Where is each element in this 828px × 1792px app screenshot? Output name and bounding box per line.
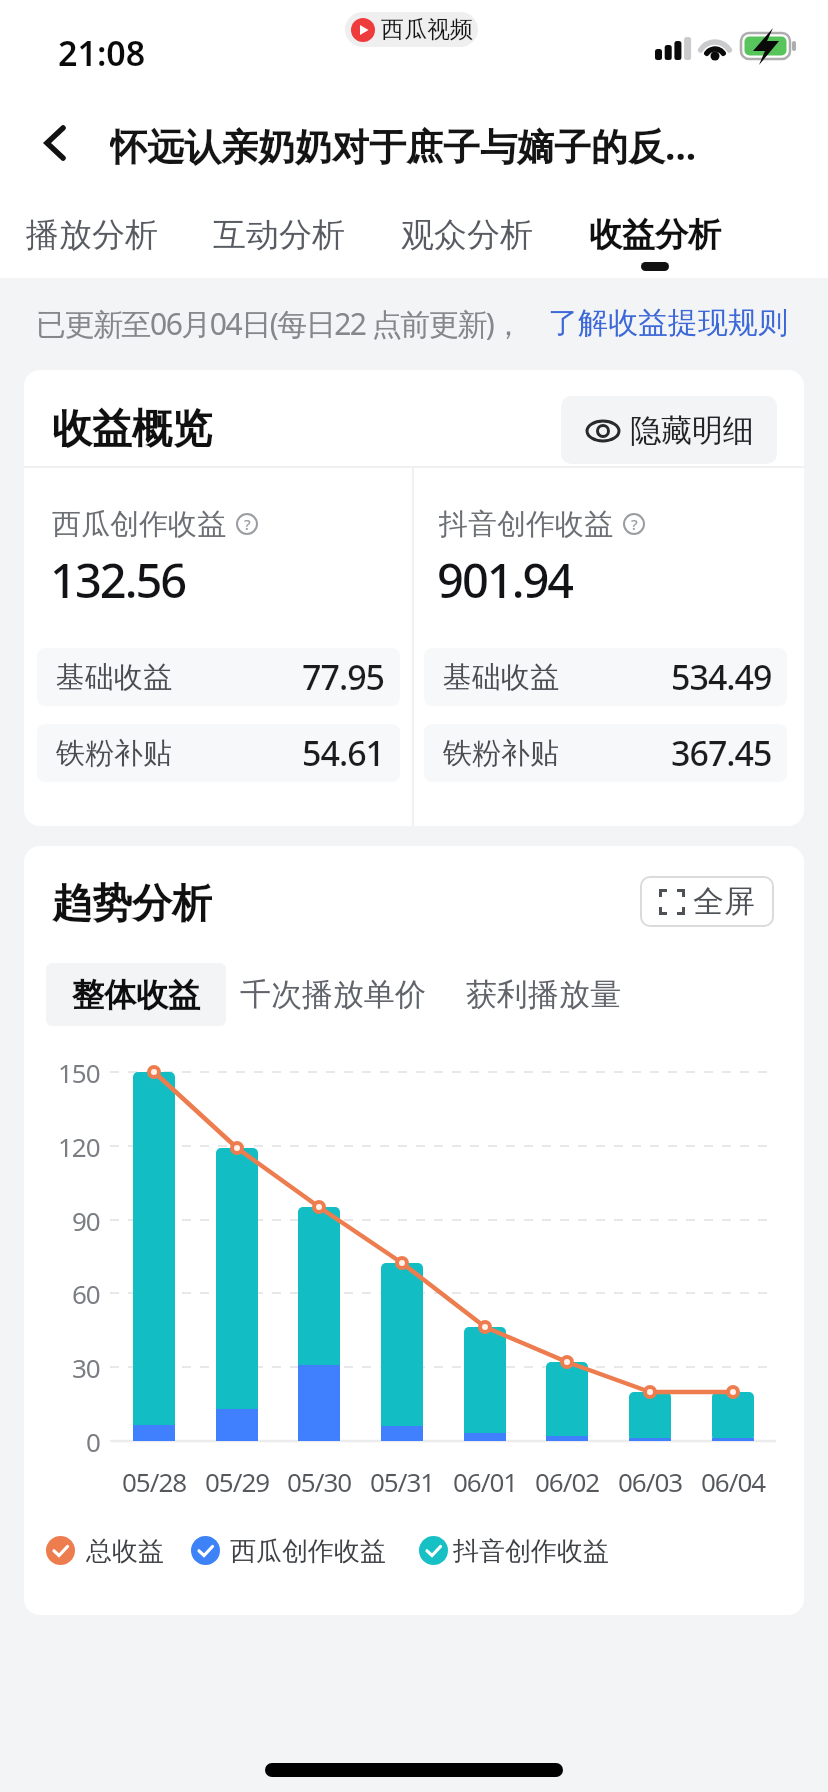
button[interactable]: 整体收益 (46, 963, 226, 1026)
staticText: 534.49 (671, 654, 772, 700)
button[interactable]: 互动分析 (211, 212, 347, 258)
staticText: 06/01 (453, 1464, 518, 1499)
staticText: 05/29 (205, 1464, 270, 1499)
staticText: 隐藏明细 (630, 411, 754, 450)
staticText: 05/31 (370, 1464, 435, 1499)
staticText: 铁粉补贴 (56, 735, 172, 772)
staticText: 基础收益 (443, 659, 559, 696)
staticText: 铁粉补贴 (443, 735, 559, 772)
staticText: 千次播放单价 (240, 975, 426, 1014)
staticText: 367.45 (671, 730, 772, 776)
staticText: 怀远认亲奶奶对于庶子与嫡子的反... (110, 120, 697, 166)
staticText: 132.56 (50, 548, 186, 610)
staticText: 收益概览 (52, 403, 212, 453)
staticText: 了解收益提现规则 (548, 304, 788, 342)
button[interactable]: 收益分析 (587, 212, 723, 258)
staticText: 901.94 (437, 548, 573, 610)
staticText: 抖音创作收益 (439, 506, 613, 542)
button[interactable]: 观众分析 (399, 212, 535, 258)
button[interactable]: 千次播放单价 (240, 963, 466, 1026)
staticText: 收益分析 (589, 214, 721, 256)
staticText: 120 (58, 1129, 100, 1164)
staticText: 已更新至06月04日(每日22 点前更新)， (36, 303, 522, 344)
button[interactable]: 西瓜视频 (345, 12, 478, 47)
staticText: ? (244, 514, 251, 534)
staticText: 抖音创作收益 (453, 1535, 609, 1568)
button[interactable]: 播放分析 (24, 212, 160, 258)
button[interactable]: 全屏 (640, 876, 774, 927)
staticText: 60 (72, 1276, 100, 1311)
staticText: 全屏 (693, 882, 755, 921)
staticText: 150 (58, 1055, 100, 1090)
staticText: 播放分析 (26, 214, 158, 256)
button[interactable]: 了解收益提现规则 (548, 301, 793, 345)
staticText: 06/03 (618, 1464, 683, 1499)
staticText: 0 (86, 1424, 100, 1459)
staticText: 90 (72, 1203, 100, 1238)
staticText: 互动分析 (213, 214, 345, 256)
staticText: 05/30 (287, 1464, 352, 1499)
staticText: 趋势分析 (52, 878, 212, 926)
staticText: 54.61 (302, 730, 385, 776)
staticText: 30 (72, 1350, 100, 1385)
staticText: 整体收益 (72, 975, 200, 1015)
staticText: 基础收益 (56, 659, 172, 696)
button[interactable]: 隐藏明细 (561, 396, 777, 464)
staticText: 西瓜创作收益 (52, 506, 226, 542)
staticText: 05/28 (122, 1464, 187, 1499)
staticText: 西瓜创作收益 (230, 1535, 386, 1568)
staticText: 总收益 (86, 1535, 164, 1568)
staticText: ? (631, 514, 638, 534)
staticText: 西瓜视频 (381, 15, 473, 44)
staticText: 21:08 (58, 30, 146, 68)
button[interactable] (30, 115, 80, 171)
staticText: 观众分析 (401, 214, 533, 256)
staticText: 06/04 (701, 1464, 766, 1499)
staticText: 77.95 (302, 654, 385, 700)
staticText: 06/02 (535, 1464, 600, 1499)
button[interactable]: 获利播放量 (466, 963, 666, 1026)
staticText: 获利播放量 (466, 975, 621, 1014)
